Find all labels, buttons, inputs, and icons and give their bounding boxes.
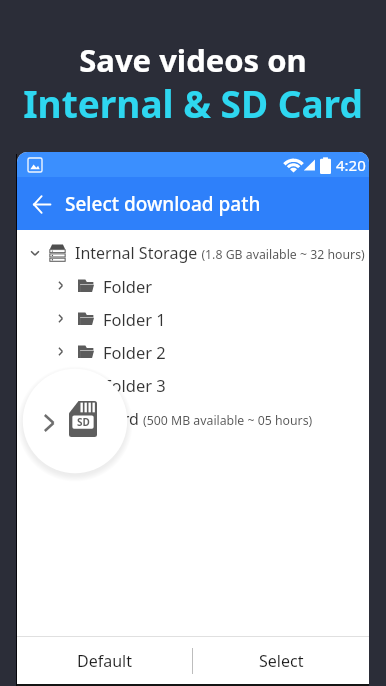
staticText: Internal & SD Card — [23, 78, 363, 128]
button[interactable]: Back — [27, 187, 61, 221]
button[interactable]: Folder 3 — [17, 368, 369, 401]
button[interactable]: Folder 1 — [17, 302, 369, 335]
button[interactable]: Folder — [17, 269, 369, 302]
staticText: Folder 1 — [103, 308, 166, 330]
staticText: Folder — [103, 275, 153, 297]
staticText: 4:20 — [336, 155, 366, 175]
staticText: Default — [77, 650, 132, 672]
button[interactable]: Default — [17, 637, 192, 684]
staticText: Save videos on — [79, 39, 307, 81]
staticText: SD — [77, 415, 90, 429]
staticText: Select — [259, 650, 304, 672]
staticText: Folder 3 — [103, 374, 166, 396]
button[interactable]: Internal Storage (1.8 GB available ~ 32 … — [17, 236, 369, 269]
staticText: SD Card (500 MB available ~ 05 hours) — [79, 408, 313, 430]
button[interactable]: Folder 2 — [17, 335, 369, 368]
staticText: Internal Storage (1.8 GB available ~ 32 … — [75, 242, 365, 264]
staticText: Folder 2 — [103, 341, 166, 363]
button[interactable]: Select — [193, 637, 369, 684]
staticText: Select download path — [65, 191, 261, 217]
button[interactable]: SD Card (500 MB available ~ 05 hours) — [17, 401, 369, 437]
